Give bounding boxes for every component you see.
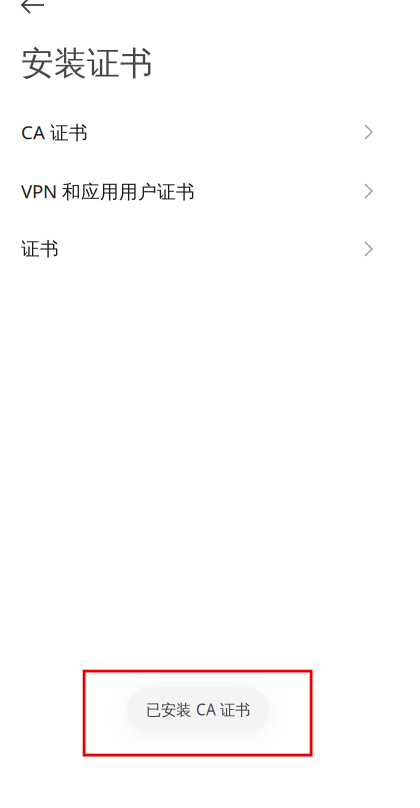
- button[interactable]: VPN 和应用用户证书: [0, 167, 420, 215]
- button[interactable]: CA 证书: [0, 108, 420, 156]
- staticText: 已安装 CA 证书: [146, 699, 250, 720]
- staticText: 证书: [21, 237, 59, 261]
- button[interactable]: Back: [0, 0, 64, 30]
- staticText: CA 证书: [21, 119, 88, 145]
- button[interactable]: 证书: [0, 225, 420, 273]
- staticText: 安装证书: [21, 43, 153, 84]
- staticText: VPN 和应用用户证书: [21, 178, 195, 204]
